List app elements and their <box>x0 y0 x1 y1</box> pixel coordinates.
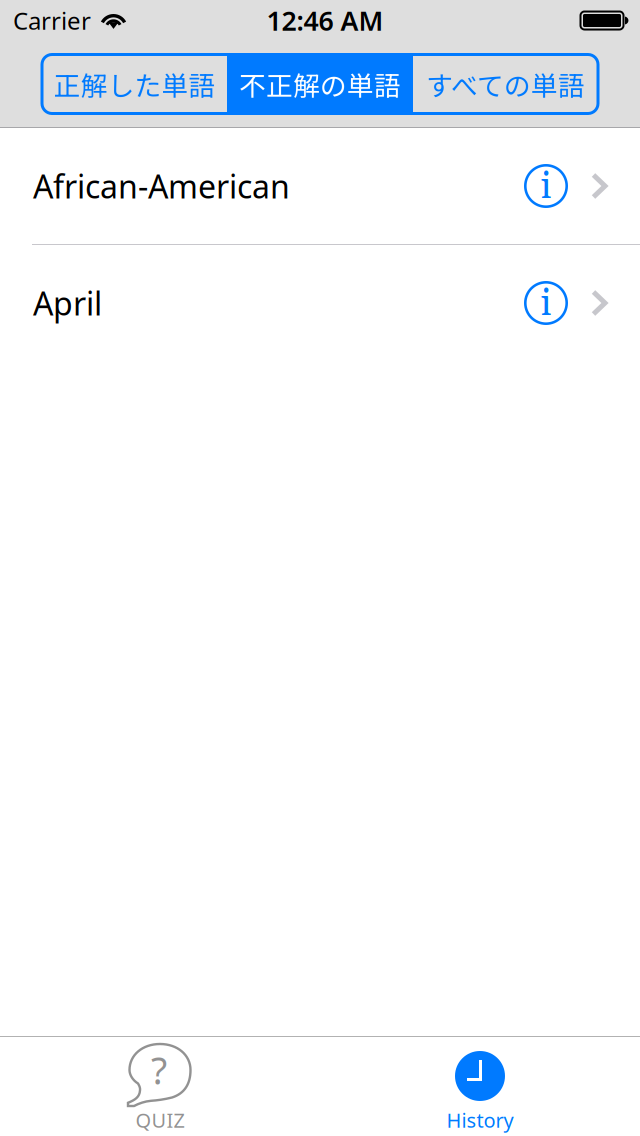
button[interactable]: History <box>320 1036 640 1136</box>
staticText: 12:46 AM <box>266 3 383 38</box>
staticText: ? <box>151 1045 167 1095</box>
staticText: History <box>446 1107 513 1133</box>
button[interactable]: すべての単語 <box>413 54 598 113</box>
staticText: すべての単語 <box>426 65 585 103</box>
staticText: African-American <box>33 165 290 207</box>
button[interactable]: April <box>0 245 640 361</box>
button[interactable]: 不正解の単語 <box>227 54 413 113</box>
staticText: QUIZ <box>135 1107 184 1133</box>
button[interactable]: 正解した単語 <box>42 54 227 113</box>
staticText: i <box>540 280 551 328</box>
staticText: i <box>540 163 551 211</box>
staticText: 不正解の単語 <box>239 65 401 103</box>
button[interactable]: ? <box>0 1036 320 1136</box>
button[interactable]: African-American <box>0 128 640 244</box>
staticText: 正解した単語 <box>53 65 215 103</box>
staticText: Carrier <box>13 5 91 36</box>
staticText: April <box>33 282 102 324</box>
